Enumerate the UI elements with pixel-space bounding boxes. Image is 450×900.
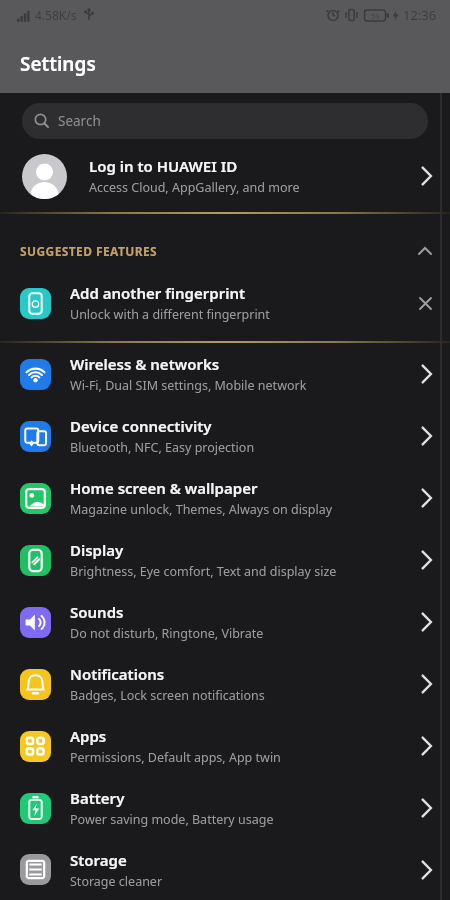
staticText: Notifications <box>70 664 165 684</box>
button[interactable]: Add another fingerprint <box>0 272 450 334</box>
staticText: Wi-Fi, Dual SIM settings, Mobile network <box>70 377 307 394</box>
staticText: Storage <box>70 850 127 870</box>
staticText: Power saving mode, Battery usage <box>70 811 274 828</box>
staticText: Log in to HUAWEI ID <box>89 156 238 176</box>
staticText: Badges, Lock screen notifications <box>70 687 265 704</box>
button[interactable]: Log in to HUAWEI ID <box>0 147 450 205</box>
button[interactable]: SUGGESTED FEATURES <box>0 243 450 259</box>
button[interactable]: Apps <box>0 715 450 777</box>
staticText: Apps <box>70 726 107 746</box>
staticText: Bluetooth, NFC, Easy projection <box>70 439 255 456</box>
staticText: Storage cleaner <box>70 873 163 890</box>
staticText: Device connectivity <box>70 416 212 436</box>
staticText: Permissions, Default apps, App twin <box>70 749 281 766</box>
staticText: Settings <box>20 51 96 77</box>
button[interactable]: Sounds <box>0 591 450 653</box>
button[interactable] <box>419 297 432 310</box>
button[interactable]: Wireless & networks <box>0 343 450 405</box>
staticText: Brightness, Eye comfort, Text and displa… <box>70 563 337 580</box>
staticText: Search <box>58 112 101 130</box>
staticText: 4.58K/s <box>35 7 77 23</box>
staticText: Sounds <box>70 602 124 622</box>
staticText: Magazine unlock, Themes, Always on displ… <box>70 501 333 518</box>
button[interactable]: Notifications <box>0 653 450 715</box>
staticText: Unlock with a different fingerprint <box>70 306 270 323</box>
staticText: Home screen & wallpaper <box>70 478 258 498</box>
button[interactable]: Search <box>22 103 428 139</box>
button[interactable]: Home screen & wallpaper <box>0 467 450 529</box>
button[interactable]: Battery <box>0 777 450 839</box>
staticText: Access Cloud, AppGallery, and more <box>89 179 300 196</box>
staticText: 59 <box>371 11 380 21</box>
button[interactable]: Display <box>0 529 450 591</box>
button[interactable]: Device connectivity <box>0 405 450 467</box>
staticText: Wireless & networks <box>70 354 220 374</box>
staticText: Add another fingerprint <box>70 283 246 303</box>
staticText: SUGGESTED FEATURES <box>20 243 158 259</box>
staticText: 12:36 <box>403 6 437 24</box>
staticText: Do not disturb, Ringtone, Vibrate <box>70 625 264 642</box>
staticText: Display <box>70 540 124 560</box>
staticText: Battery <box>70 788 125 808</box>
button[interactable]: Storage <box>0 839 450 900</box>
